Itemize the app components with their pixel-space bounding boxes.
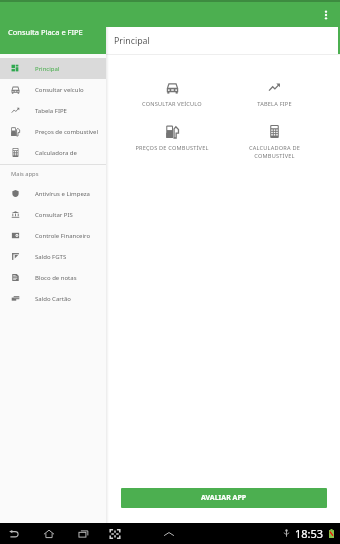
button[interactable]: Bloco de notas	[0, 267, 106, 288]
staticText: Consultar PIS	[35, 211, 73, 219]
button[interactable]: Home	[40, 525, 58, 543]
staticText: 18:53	[295, 526, 324, 541]
staticText: Antivírus e Limpeza	[35, 190, 90, 198]
button[interactable]: PREÇOS DE COMBUSTÍVEL	[121, 125, 223, 152]
staticText: Saldo FGTS	[35, 253, 67, 261]
staticText: CONSULTAR VEÍCULO	[142, 100, 202, 108]
button[interactable]: More options	[316, 5, 336, 25]
button[interactable]: Controle Financeiro	[0, 225, 106, 246]
staticText: AVALIAR APP	[201, 493, 247, 503]
staticText: CALCULADORA DE COMBUSTÍVEL	[233, 144, 316, 160]
staticText: Bloco de notas	[35, 274, 77, 282]
staticText: Consultar veículo	[35, 86, 84, 94]
staticText: Tabela FIPE	[35, 107, 67, 115]
staticText: Preços de combustível	[35, 128, 99, 136]
button[interactable]: Consultar veículo	[0, 79, 106, 100]
button[interactable]: Consultar PIS	[0, 204, 106, 225]
button[interactable]: CONSULTAR VEÍCULO	[121, 81, 223, 108]
button[interactable]: Shrink	[106, 525, 124, 543]
staticText: Principal	[35, 65, 60, 73]
button[interactable]: Antivírus e Limpeza	[0, 183, 106, 204]
button[interactable]: Saldo Cartão	[0, 288, 106, 309]
staticText: Saldo Cartão	[35, 295, 71, 303]
button[interactable]: Principal	[0, 58, 106, 79]
button[interactable]: Saldo FGTS	[0, 246, 106, 267]
button[interactable]: CALCULADORA DE COMBUSTÍVEL	[223, 125, 326, 160]
staticText: Controle Financeiro	[35, 232, 91, 240]
staticText: Consulta Placa e FIPE	[8, 27, 83, 37]
button[interactable]: TABELA FIPE	[223, 81, 326, 108]
staticText: Calculadora de	[35, 149, 77, 157]
button[interactable]: Tabela FIPE	[0, 100, 106, 121]
button[interactable]: Back	[5, 525, 23, 543]
button[interactable]: Preços de combustível	[0, 121, 106, 142]
staticText: TABELA FIPE	[257, 100, 292, 108]
staticText: Principal	[114, 35, 150, 47]
staticText: PREÇOS DE COMBUSTÍVEL	[135, 144, 209, 152]
button[interactable]: AVALIAR APP	[121, 488, 327, 508]
button[interactable]: Calculadora de	[0, 142, 106, 163]
staticText: Mais apps	[11, 170, 39, 178]
button[interactable]: Recents	[75, 525, 93, 543]
button[interactable]: Expand	[160, 525, 178, 543]
